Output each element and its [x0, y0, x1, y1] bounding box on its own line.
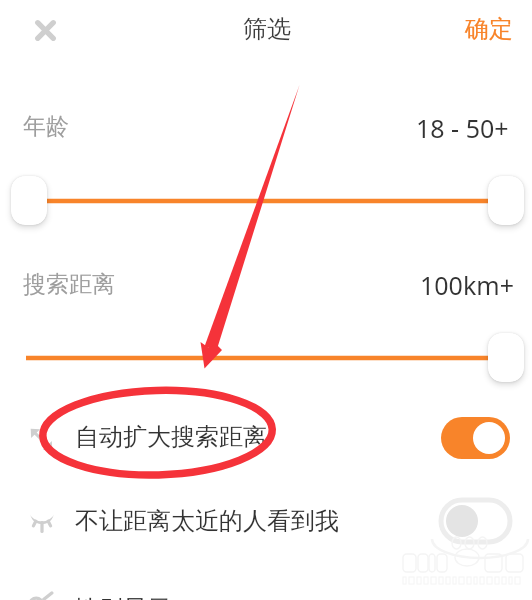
button[interactable]: Auto expand search distance, on — [441, 417, 510, 459]
staticText: 确定 — [465, 14, 513, 44]
staticText: 性别显示 — [75, 594, 171, 600]
staticText: 不让距离太近的人看到我 — [75, 506, 339, 536]
button[interactable]: 自动扩大搜索距离 — [0, 400, 532, 476]
staticText: 100km+ — [420, 268, 514, 302]
staticText: 18 - 50+ — [416, 111, 509, 145]
button[interactable]: Hide from nearby people, off — [441, 500, 510, 542]
staticText: 搜索距离 — [23, 270, 115, 299]
button[interactable]: 性别显示 — [0, 568, 532, 600]
button[interactable]: Maximum age — [488, 176, 524, 225]
button[interactable]: 不让距离太近的人看到我 — [0, 484, 532, 560]
staticText: 年龄 — [23, 112, 69, 141]
staticText: 自动扩大搜索距离 — [75, 422, 267, 452]
button[interactable]: Search distance — [488, 333, 524, 382]
button[interactable]: 确定 — [455, 6, 503, 36]
button[interactable]: Close — [21, 7, 66, 52]
button[interactable]: Minimum age — [11, 176, 47, 225]
staticText: 筛选 — [243, 14, 291, 44]
